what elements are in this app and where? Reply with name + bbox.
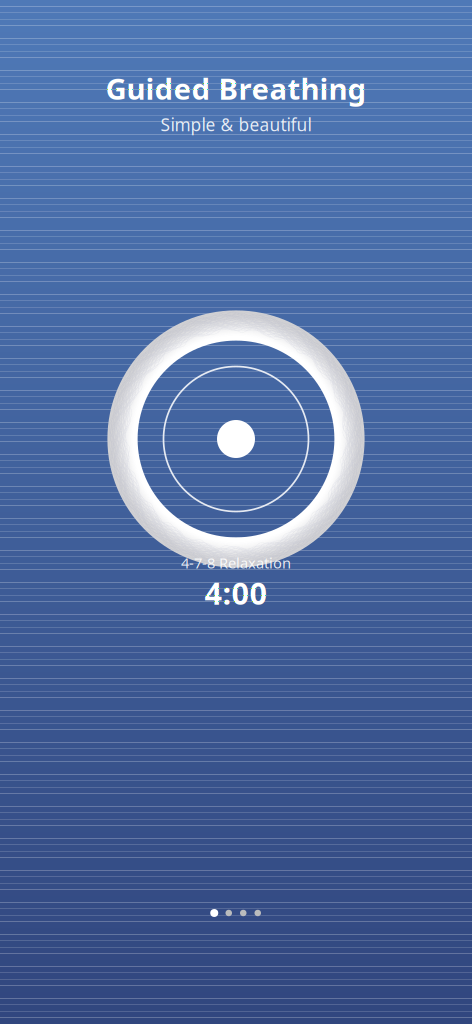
button[interactable]: Start breathing session — [105, 308, 367, 570]
staticText: Guided Breathing — [105, 69, 366, 108]
staticText: 4:00 — [204, 572, 267, 613]
button[interactable]: Page 4 of 4 — [250, 908, 265, 918]
button[interactable]: Page 2 of 4 — [221, 908, 236, 918]
staticText: 4-7-8 Relaxation — [181, 553, 291, 572]
button[interactable]: Page 3 of 4 — [236, 908, 250, 918]
staticText: Simple & beautiful — [160, 113, 311, 136]
button[interactable]: Page 1 of 4 — [207, 908, 221, 918]
